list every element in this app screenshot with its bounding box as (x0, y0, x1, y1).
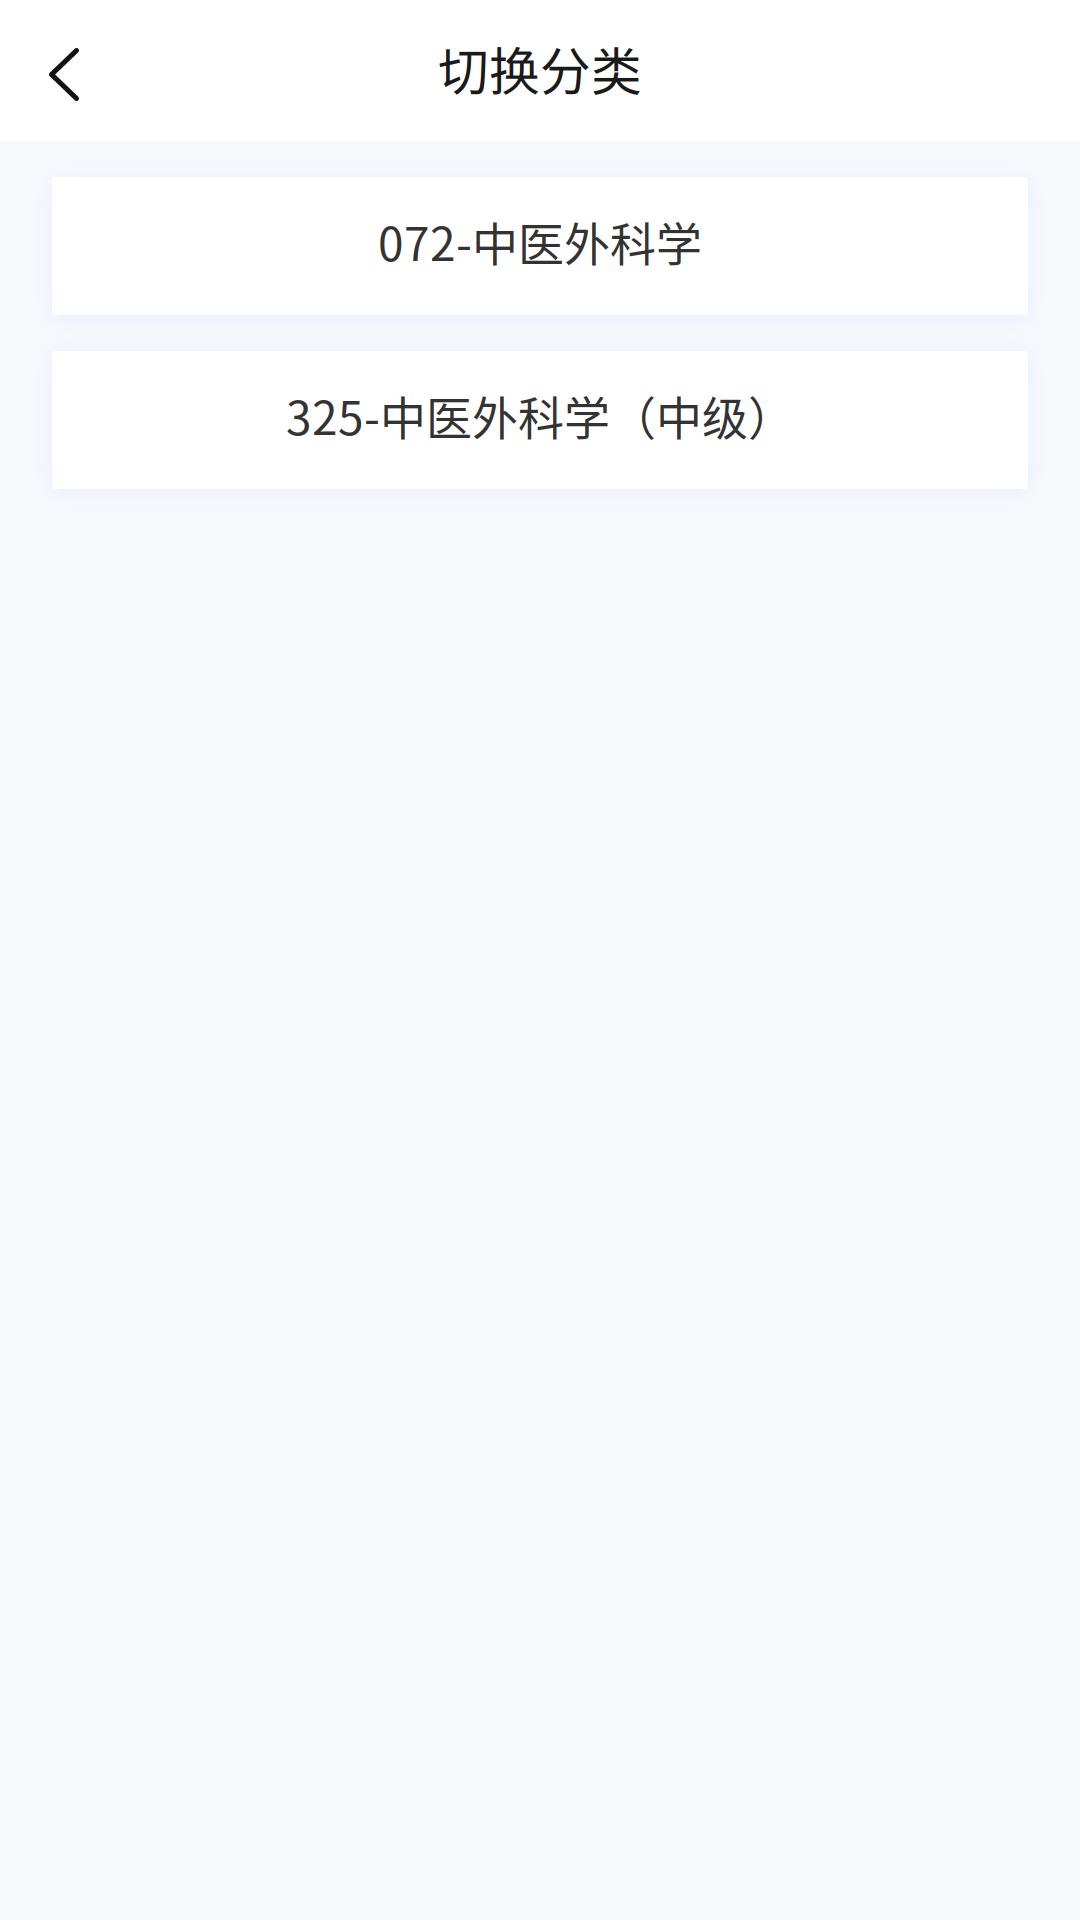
staticText: 072-中医外科学 (378, 208, 702, 274)
button[interactable]: 072-中医外科学 (52, 177, 1028, 315)
staticText: 切换分类 (438, 32, 642, 105)
button[interactable]: 325-中医外科学（中级） (52, 351, 1028, 489)
button[interactable]: Back (0, 0, 101, 141)
staticText: 325-中医外科学（中级） (286, 382, 794, 448)
